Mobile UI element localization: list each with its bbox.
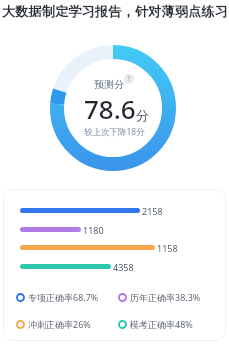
staticText: ? xyxy=(127,74,131,84)
button[interactable]: 冲刺正确率26% xyxy=(16,318,91,330)
staticText: 大数据制定学习报告，针对薄弱点练习 xyxy=(2,3,229,19)
staticText: 4358 xyxy=(113,261,134,273)
staticText: 较上次下降18分 xyxy=(84,126,145,138)
staticText: 预测分 xyxy=(94,78,124,91)
staticText: 2158 xyxy=(142,205,163,217)
staticText: 模考正确率48% xyxy=(130,318,193,330)
staticText: 历年正确率38.3% xyxy=(130,291,201,303)
staticText: 分 xyxy=(136,107,149,123)
button[interactable]: 专项正确率68.7% xyxy=(16,291,99,303)
button[interactable]: ? xyxy=(124,74,134,84)
button[interactable]: 模考正确率48% xyxy=(118,318,193,330)
staticText: 冲刺正确率26% xyxy=(28,318,91,330)
staticText: 1158 xyxy=(157,242,178,254)
staticText: 1180 xyxy=(83,224,104,236)
staticText: 78.6 xyxy=(84,91,136,126)
staticText: 专项正确率68.7% xyxy=(28,291,99,303)
button[interactable]: 历年正确率38.3% xyxy=(118,291,201,303)
